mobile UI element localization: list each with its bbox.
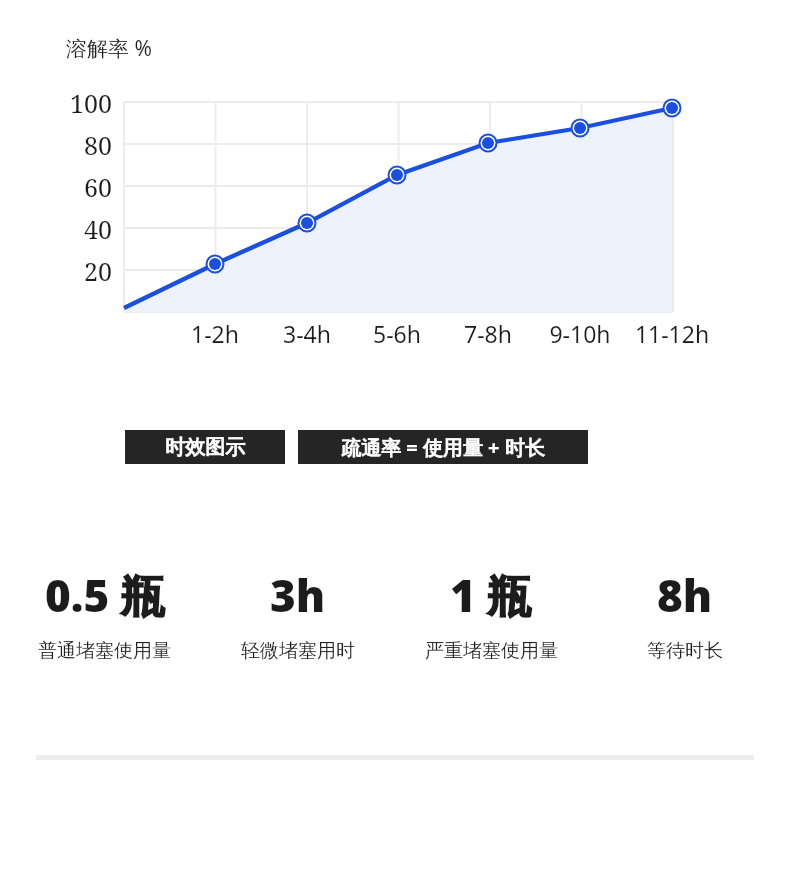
button[interactable]: 时效图示: [125, 430, 285, 464]
staticText: 40: [52, 212, 112, 246]
staticText: 0.5 瓶: [45, 565, 165, 625]
button[interactable]: 疏通率 = 使用量 + 时长: [298, 430, 588, 464]
staticText: 疏通率 = 使用量 + 时长: [341, 434, 545, 461]
staticText: 溶解率 %: [66, 34, 152, 63]
staticText: 11-12h: [612, 318, 732, 349]
staticText: 1 瓶: [450, 565, 532, 625]
staticText: 7-8h: [428, 318, 548, 349]
button[interactable]: 8h: [588, 565, 782, 663]
staticText: 3-4h: [247, 318, 367, 349]
staticText: 等待时长: [647, 639, 723, 663]
staticText: 1-2h: [155, 318, 275, 349]
staticText: 时效图示: [165, 435, 245, 460]
staticText: 80: [52, 128, 112, 162]
staticText: 5-6h: [337, 318, 457, 349]
staticText: 20: [52, 254, 112, 288]
staticText: 3h: [270, 565, 326, 625]
staticText: 100: [52, 86, 112, 120]
staticText: 60: [52, 170, 112, 204]
staticText: 普通堵塞使用量: [38, 639, 171, 663]
button[interactable]: 1 瓶: [394, 565, 588, 663]
button[interactable]: 3h: [201, 565, 394, 663]
staticText: 9-10h: [520, 318, 640, 349]
button[interactable]: 0.5 瓶: [8, 565, 201, 663]
staticText: 8h: [657, 565, 713, 625]
staticText: 严重堵塞使用量: [425, 639, 558, 663]
staticText: 轻微堵塞用时: [241, 639, 355, 663]
